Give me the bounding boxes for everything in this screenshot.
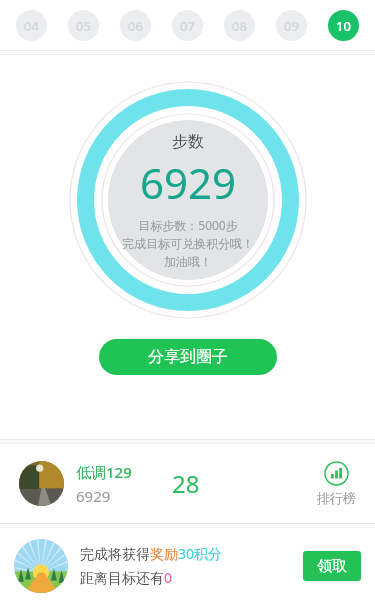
staticText: 6929 — [140, 154, 237, 211]
staticText: 低调129 — [76, 462, 132, 482]
staticText: 距离目标还有0 — [80, 568, 173, 587]
staticText: 目标步数：5000步 — [138, 217, 238, 233]
button[interactable]: 08 — [224, 10, 255, 41]
button[interactable]: 10 — [328, 10, 359, 41]
button[interactable]: 05 — [68, 10, 99, 41]
button[interactable]: 领取 — [303, 551, 361, 581]
staticText: 6929 — [76, 486, 111, 506]
staticText: 07 — [180, 17, 195, 35]
button[interactable]: 09 — [276, 10, 307, 41]
staticText: 领取 — [317, 557, 347, 576]
button[interactable]: 07 — [172, 10, 203, 41]
staticText: 09 — [284, 17, 299, 35]
staticText: 10 — [336, 17, 351, 35]
staticText: 完成目标可兑换积分哦！ — [122, 236, 254, 251]
staticText: 04 — [24, 17, 39, 35]
staticText: 分享到圈子 — [148, 347, 228, 367]
staticText: 28 — [172, 467, 200, 500]
staticText: 06 — [128, 17, 143, 35]
button[interactable]: 06 — [120, 10, 151, 41]
button[interactable]: 04 — [16, 10, 47, 41]
staticText: 加油哦！ — [164, 254, 212, 269]
staticText: 排行榜 — [317, 490, 356, 506]
button[interactable]: 分享到圈子 — [99, 339, 277, 375]
staticText: 05 — [76, 17, 91, 35]
staticText: 08 — [232, 17, 247, 35]
button[interactable]: 低调129 — [19, 444, 356, 523]
button[interactable]: 排行榜 — [317, 461, 356, 506]
staticText: 步数 — [172, 132, 204, 152]
staticText: 完成将获得奖励30积分 — [80, 544, 223, 563]
